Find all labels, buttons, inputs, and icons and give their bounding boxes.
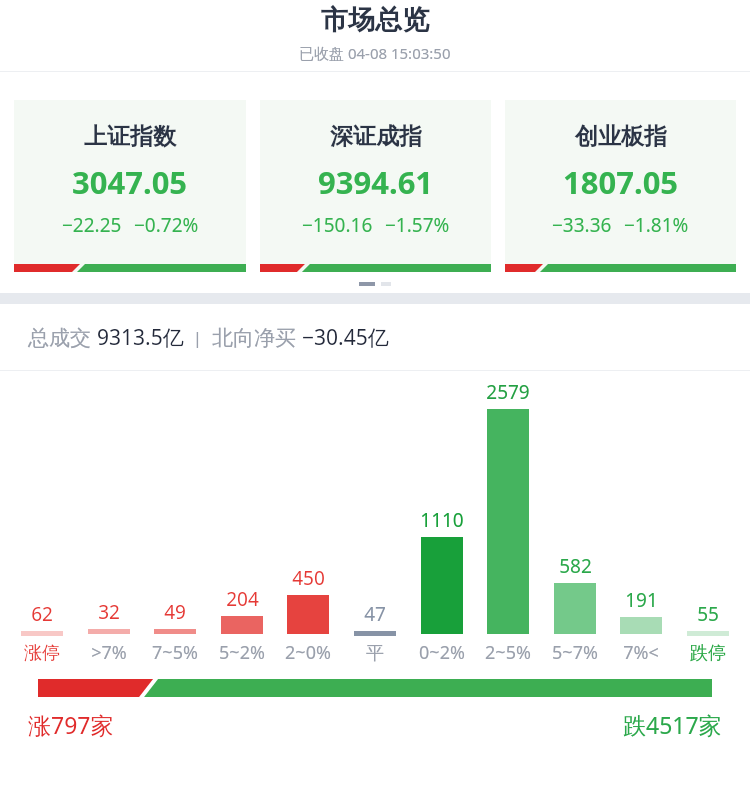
- staticText: −150.16: [302, 212, 373, 238]
- staticText: 5~2%: [219, 640, 265, 665]
- staticText: 上证指数: [84, 122, 176, 151]
- staticText: 2~5%: [485, 640, 531, 665]
- button[interactable]: 深证成指: [260, 100, 491, 272]
- staticText: 1807.05: [563, 161, 679, 203]
- staticText: 2579: [486, 379, 530, 405]
- staticText: 55: [697, 601, 719, 627]
- staticText: −30.45亿: [302, 323, 389, 352]
- staticText: 7~5%: [152, 640, 198, 665]
- staticText: 北向净买: [212, 323, 302, 352]
- staticText: 深证成指: [330, 122, 422, 151]
- staticText: 450: [292, 565, 325, 591]
- button[interactable]: 32: [83, 599, 135, 673]
- staticText: 3047.05: [72, 161, 188, 203]
- staticText: 市场总览: [321, 3, 429, 37]
- button[interactable]: 191: [615, 587, 667, 673]
- staticText: 2~0%: [285, 640, 331, 665]
- staticText: 跌4517家: [623, 709, 722, 740]
- staticText: 7%<: [623, 640, 659, 665]
- staticText: 191: [625, 587, 658, 613]
- button[interactable]: 62: [16, 601, 68, 673]
- staticText: −33.36: [552, 212, 612, 238]
- staticText: 跌停: [690, 642, 726, 665]
- staticText: >7%: [91, 640, 127, 665]
- staticText: 涨停: [24, 642, 60, 665]
- staticText: 9394.61: [318, 161, 434, 203]
- button[interactable]: 上证指数: [14, 100, 246, 272]
- button[interactable]: 2579: [482, 379, 534, 673]
- staticText: |: [184, 326, 212, 349]
- button[interactable]: 450: [282, 565, 334, 673]
- button[interactable]: 创业板指: [505, 100, 736, 272]
- button[interactable]: 47: [349, 601, 401, 673]
- staticText: 49: [164, 599, 186, 625]
- staticText: −1.57%: [385, 212, 450, 238]
- staticText: 0~2%: [419, 640, 465, 665]
- staticText: 9313.5亿: [97, 323, 184, 352]
- staticText: 47: [364, 601, 386, 627]
- button[interactable]: 55: [682, 601, 734, 673]
- staticText: 已收盘 04-08 15:03:50: [299, 43, 451, 63]
- staticText: 创业板指: [575, 122, 667, 151]
- button[interactable]: 582: [549, 553, 601, 673]
- staticText: 32: [98, 599, 120, 625]
- staticText: 204: [226, 586, 259, 612]
- staticText: 总成交: [28, 323, 97, 352]
- staticText: 62: [31, 601, 53, 627]
- staticText: 平: [366, 642, 384, 665]
- button[interactable]: 49: [149, 599, 201, 673]
- staticText: 1110: [420, 507, 464, 533]
- button[interactable]: 总成交: [0, 304, 750, 370]
- staticText: 582: [559, 553, 592, 579]
- staticText: 涨797家: [28, 709, 114, 740]
- staticText: −0.72%: [134, 212, 199, 238]
- staticText: −1.81%: [624, 212, 689, 238]
- button[interactable]: 204: [216, 586, 268, 673]
- button[interactable]: 1110: [416, 507, 468, 673]
- staticText: −22.25: [62, 212, 122, 238]
- staticText: 5~7%: [552, 640, 598, 665]
